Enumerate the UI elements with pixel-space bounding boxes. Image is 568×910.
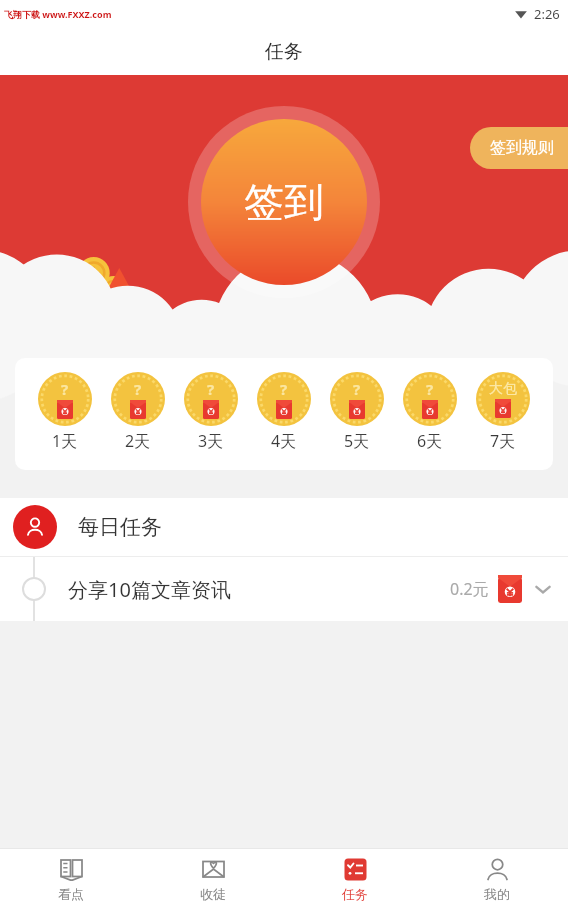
button[interactable]: 收徒 xyxy=(142,848,284,910)
button[interactable]: 每日任务 xyxy=(0,498,568,556)
staticText: 6天 xyxy=(417,430,443,452)
staticText: 分享10篇文章资讯 xyxy=(68,576,231,603)
other: 看点 xyxy=(59,857,84,882)
button[interactable]: 看点 xyxy=(0,848,142,910)
staticText: ? xyxy=(207,379,215,399)
button[interactable]: 大包 xyxy=(474,372,532,452)
staticText: 任务 xyxy=(265,40,303,64)
button[interactable]: ? xyxy=(109,372,167,452)
button[interactable]: 分享10篇文章资讯 xyxy=(0,557,568,621)
staticText: 大包 xyxy=(489,380,517,398)
button[interactable]: 签到规则 xyxy=(470,127,568,169)
button[interactable]: ? xyxy=(255,372,313,452)
button[interactable]: 签到 xyxy=(201,119,367,285)
button[interactable]: ? xyxy=(182,372,240,452)
staticText: 0.2元 xyxy=(450,578,489,600)
staticText: 2天 xyxy=(125,430,151,452)
staticText: 1天 xyxy=(52,430,78,452)
staticText: ? xyxy=(134,379,142,399)
staticText: 5天 xyxy=(344,430,370,452)
button[interactable]: ? xyxy=(36,372,94,452)
staticText: 3天 xyxy=(198,430,224,452)
staticText: 收徒 xyxy=(200,886,226,902)
staticText: 签到规则 xyxy=(490,138,554,158)
staticText: ? xyxy=(280,379,288,399)
button[interactable]: 任务 xyxy=(284,848,426,910)
staticText: 飞翔下载 www.FXXZ.com xyxy=(4,8,112,20)
staticText: 7天 xyxy=(490,430,516,452)
other: 我的 xyxy=(485,857,510,882)
staticText: 看点 xyxy=(58,886,84,902)
staticText: 签到 xyxy=(244,177,324,227)
staticText: 2:26 xyxy=(534,5,560,23)
button[interactable]: ? xyxy=(401,372,459,452)
other: 任务 xyxy=(343,857,368,882)
staticText: ? xyxy=(353,379,361,399)
other: 收徒 xyxy=(201,857,226,882)
staticText: ? xyxy=(426,379,434,399)
staticText: 任务 xyxy=(342,886,368,902)
button[interactable]: ? xyxy=(328,372,386,452)
staticText: 每日任务 xyxy=(78,514,162,540)
staticText: ? xyxy=(61,379,69,399)
staticText: 我的 xyxy=(484,886,510,902)
staticText: 4天 xyxy=(271,430,297,452)
button[interactable]: 我的 xyxy=(426,848,568,910)
